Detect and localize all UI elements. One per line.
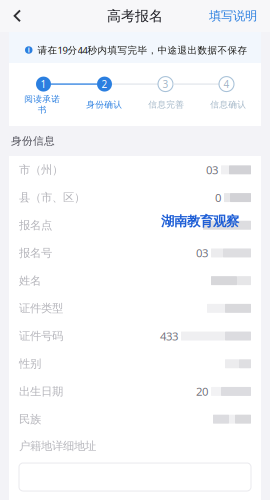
staticText: 湖南教育观察 bbox=[161, 213, 239, 230]
button[interactable]: 性别 bbox=[9, 350, 261, 378]
button[interactable]: 报名号 bbox=[9, 239, 261, 267]
staticText: 0 bbox=[215, 190, 221, 205]
staticText: 证件号码 bbox=[19, 329, 63, 343]
staticText: 证件类型 bbox=[19, 301, 63, 315]
staticText: 姓名 bbox=[19, 273, 41, 288]
button[interactable]: 姓名 bbox=[9, 267, 261, 294]
button[interactable]: 报名点 bbox=[9, 211, 261, 239]
staticText: 身份确认 bbox=[86, 99, 122, 110]
staticText: 03 bbox=[196, 245, 208, 261]
staticText: i bbox=[28, 45, 30, 55]
staticText: 县（市、区） bbox=[19, 190, 85, 205]
staticText: 民族 bbox=[19, 412, 41, 426]
staticText: 填写说明 bbox=[209, 8, 257, 24]
staticText: 报名号 bbox=[19, 246, 52, 260]
staticText: 03 bbox=[206, 162, 218, 177]
staticText: 报名点 bbox=[19, 218, 52, 232]
staticText: 信息完善 bbox=[148, 99, 184, 110]
staticText: 4 bbox=[223, 77, 229, 91]
staticText: 20 bbox=[196, 384, 208, 399]
staticText: 阅读承诺书 bbox=[24, 94, 60, 115]
button[interactable]: 市（州） bbox=[9, 156, 261, 184]
button[interactable]: 出生日期 bbox=[9, 378, 261, 405]
staticText: 市（州） bbox=[19, 163, 63, 177]
button[interactable]: 证件类型 bbox=[9, 294, 261, 322]
staticText: 信息确认 bbox=[210, 99, 246, 110]
staticText: 高考报名 bbox=[107, 7, 163, 25]
staticText: 户籍地详细地址 bbox=[19, 439, 96, 453]
staticText: 1 bbox=[40, 77, 46, 91]
staticText: 出生日期 bbox=[19, 384, 63, 399]
button[interactable]: 填写说明 bbox=[200, 0, 270, 32]
staticText: 2 bbox=[101, 77, 107, 91]
staticText: 请在19分44秒内填写完毕，中途退出数据不保存 bbox=[37, 44, 247, 56]
button[interactable]: Back bbox=[0, 0, 35, 32]
button[interactable]: 民族 bbox=[9, 405, 261, 433]
staticText: 身份信息 bbox=[11, 134, 55, 148]
staticText: 性别 bbox=[19, 357, 41, 371]
staticText: 3 bbox=[162, 77, 168, 91]
button[interactable]: 县（市、区） bbox=[9, 184, 261, 211]
button[interactable]: 证件号码 bbox=[9, 322, 261, 350]
staticText: 433 bbox=[160, 328, 178, 344]
